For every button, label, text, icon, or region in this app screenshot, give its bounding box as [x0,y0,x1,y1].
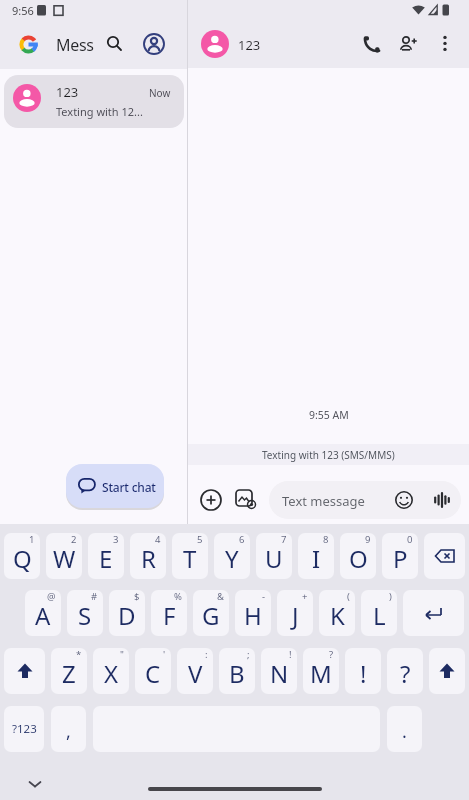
staticText: & [217,590,224,603]
staticText: 0 [407,533,413,546]
staticText: R [141,542,156,575]
staticText: T [183,542,197,575]
staticText: S [78,599,92,632]
staticText: * [76,648,82,661]
staticText: - [262,590,266,603]
staticText: V [188,657,203,690]
button[interactable]: V [177,648,213,694]
staticText: ? [400,657,411,690]
staticText: N [270,657,289,690]
staticText: $ [134,590,140,603]
staticText: ? [329,648,334,661]
staticText: Q [13,542,32,575]
button[interactable]: Text message [269,481,461,519]
staticText: Text message [282,492,365,510]
staticText: P [393,542,408,575]
button[interactable]: Z [51,648,87,694]
button[interactable] [235,488,258,511]
button[interactable]: E [88,533,124,579]
staticText: 7 [281,533,287,546]
button[interactable] [424,533,465,579]
button[interactable]: L [361,590,397,636]
button[interactable] [200,489,222,511]
button[interactable] [362,34,382,54]
staticText: 9 [365,533,371,546]
staticText: + [302,590,308,603]
staticText: Texting with 123 (SMS/MMS) [262,448,395,462]
staticText: 123 [56,83,79,101]
button[interactable]: S [67,590,103,636]
button[interactable]: 123 [4,75,184,128]
staticText: 8 [323,533,329,546]
button[interactable]: F [151,590,187,636]
button[interactable]: R [130,533,166,579]
button[interactable]: ! [345,648,381,694]
staticText: M [310,657,332,690]
staticText: . [402,719,407,744]
staticText: @ [47,590,56,603]
button[interactable] [105,34,125,54]
staticText: B [229,657,245,690]
button[interactable]: T [172,533,208,579]
staticText: A [35,599,51,632]
staticText: % [174,590,182,603]
button[interactable]: M [303,648,339,694]
staticText: Z [62,657,76,690]
staticText: O [349,542,368,575]
button[interactable]: Q [4,533,40,579]
button[interactable]: N [261,648,297,694]
staticText: I [312,542,321,575]
button[interactable]: J [277,590,313,636]
staticText: 1 [29,533,35,546]
button[interactable] [438,34,452,54]
staticText: 9:56 [12,3,34,18]
button[interactable]: Y [214,533,250,579]
button[interactable]: K [319,590,355,636]
staticText: 5 [197,533,203,546]
button[interactable]: I [298,533,334,579]
button[interactable]: O [340,533,376,579]
staticText: Y [225,542,239,575]
staticText: Now [149,86,171,100]
staticText: 123 [238,36,261,54]
staticText: ; [247,648,250,661]
staticText: K [330,599,345,632]
staticText: : [205,648,208,661]
button[interactable]: . [387,706,422,752]
button[interactable]: W [46,533,82,579]
button[interactable]: ? [387,648,423,694]
staticText: 3 [113,533,119,546]
staticText: L [373,599,386,632]
staticText: E [99,542,113,575]
button[interactable]: G [193,590,229,636]
staticText: J [292,599,299,632]
button[interactable]: B [219,648,255,694]
staticText: W [53,542,76,575]
button[interactable] [429,648,465,694]
button[interactable]: P [382,533,418,579]
staticText: ! [289,648,292,661]
button[interactable]: A [25,590,61,636]
staticText: ?123 [12,721,37,737]
staticText: Texting with 12... [56,104,143,119]
staticText: " [120,648,124,661]
staticText: C [145,657,161,690]
button[interactable]: U [256,533,292,579]
staticText: Mess [56,34,94,56]
button[interactable] [4,648,45,694]
staticText: # [91,590,98,603]
button[interactable] [398,34,420,56]
button[interactable]: ?123 [4,706,44,752]
button[interactable]: X [93,648,129,694]
staticText: ) [389,590,392,603]
button[interactable] [143,33,165,55]
staticText: Start chat [102,479,156,495]
button[interactable]: , [51,706,86,752]
staticText: F [163,599,176,632]
button[interactable]: D [109,590,145,636]
button[interactable]: H [235,590,271,636]
button[interactable]: C [135,648,171,694]
button[interactable] [403,590,464,636]
button[interactable]: Start chat [66,464,164,508]
